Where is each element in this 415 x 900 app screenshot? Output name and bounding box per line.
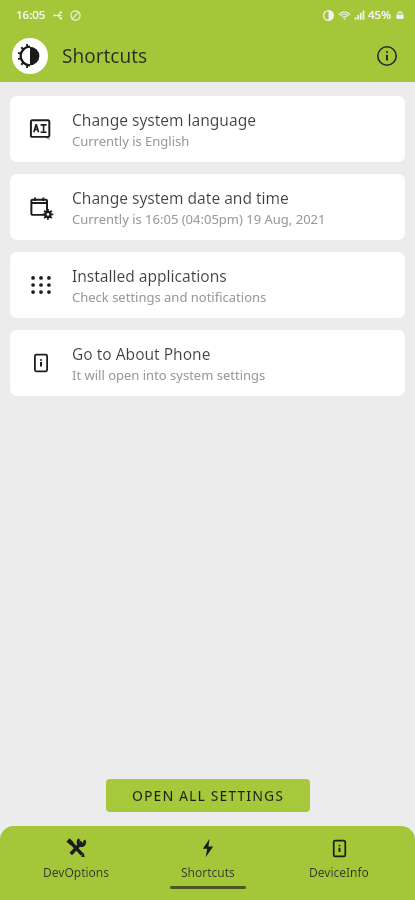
button[interactable]: DevOptions bbox=[21, 834, 131, 882]
staticText: Check settings and notifications bbox=[72, 288, 267, 306]
button[interactable]: Info bbox=[369, 38, 405, 74]
staticText: OPEN ALL SETTINGS bbox=[132, 786, 284, 805]
staticText: Go to About Phone bbox=[72, 343, 211, 364]
button[interactable]: Go to About Phone bbox=[10, 330, 405, 396]
staticText: Shortcuts bbox=[181, 864, 235, 880]
staticText: Currently is English bbox=[72, 132, 190, 150]
button[interactable]: Change system date and time bbox=[10, 174, 405, 240]
staticText: Currently is 16:05 (04:05pm) 19 Aug, 202… bbox=[72, 210, 326, 228]
button[interactable]: Installed applications bbox=[10, 252, 405, 318]
staticText: DeviceInfo bbox=[309, 864, 369, 880]
button[interactable]: Shortcuts bbox=[153, 834, 263, 882]
staticText: Installed applications bbox=[72, 265, 227, 286]
staticText: Shortcuts bbox=[62, 43, 148, 69]
staticText: 45% bbox=[368, 7, 391, 23]
staticText: DevOptions bbox=[43, 864, 109, 880]
button[interactable]: DeviceInfo bbox=[284, 834, 394, 882]
button[interactable]: Change system language bbox=[10, 96, 405, 162]
button[interactable]: OPEN ALL SETTINGS bbox=[106, 779, 310, 812]
staticText: 16:05 bbox=[16, 7, 46, 23]
staticText: Change system date and time bbox=[72, 187, 289, 208]
staticText: It will open into system settings bbox=[72, 366, 266, 384]
staticText: Change system language bbox=[72, 109, 256, 130]
